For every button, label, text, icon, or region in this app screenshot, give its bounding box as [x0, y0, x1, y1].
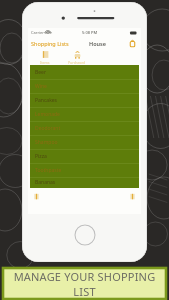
- staticText: Wine: [35, 83, 47, 90]
- button[interactable]: Delete list: [31, 191, 42, 202]
- button[interactable]: Shopping Lists: [31, 40, 69, 47]
- staticText: Deodorant: [35, 125, 61, 132]
- button[interactable]: Pizza: [30, 149, 139, 163]
- button[interactable]: Pancakes: [30, 93, 139, 107]
- staticText: Shampoo: [35, 139, 58, 146]
- button[interactable]: Lemonade: [30, 107, 139, 121]
- staticText: Toothpaste: [35, 167, 62, 174]
- button[interactable]: Bananas: [30, 177, 139, 188]
- button[interactable]: Beer: [30, 65, 139, 79]
- staticText: Pizza: [35, 153, 47, 160]
- button[interactable]: Deodorant: [30, 121, 139, 135]
- button[interactable]: Purchased: [66, 50, 88, 65]
- staticText: Bananas: [35, 179, 56, 186]
- staticText: Purchased: [68, 60, 86, 65]
- button[interactable]: Share list: [127, 191, 138, 202]
- button[interactable]: Wine: [30, 79, 139, 93]
- staticText: Carrier: [31, 30, 45, 35]
- staticText: Items: [40, 60, 50, 65]
- button[interactable]: Items: [38, 50, 52, 65]
- button[interactable]: Add item: [127, 38, 138, 49]
- button[interactable]: Toothpaste: [30, 163, 139, 177]
- button[interactable]: Home: [74, 224, 96, 246]
- staticText: Pancakes: [35, 97, 58, 104]
- staticText: Lemonade: [35, 111, 60, 118]
- staticText: House: [89, 40, 106, 47]
- staticText: MANAGE YOUR SHOPPING LIST: [3, 269, 166, 299]
- button[interactable]: Shampoo: [30, 135, 139, 149]
- staticText: Beer: [35, 69, 46, 76]
- staticText: Shopping Lists: [31, 40, 69, 47]
- staticText: 5:08 PM: [82, 30, 98, 35]
